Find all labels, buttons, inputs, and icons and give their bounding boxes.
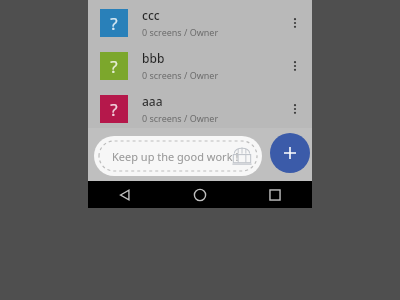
button[interactable]: ? [88,44,312,87]
other: Building [230,144,254,168]
staticText: ? [110,55,118,78]
button[interactable]: More options [282,96,308,122]
button[interactable]: Home [162,181,237,208]
button[interactable]: More options [282,10,308,36]
staticText: 0 screens / Owner [142,112,219,124]
button[interactable]: Keep up the good work ! [94,136,262,176]
button[interactable]: ? [88,87,312,130]
staticText: ccc [142,7,160,23]
staticText: 0 screens / Owner [142,69,219,81]
staticText: ? [110,98,118,121]
button[interactable]: ? [88,1,312,44]
button[interactable]: More options [282,53,308,79]
staticText: aaa [142,93,163,109]
button[interactable]: Back [88,181,162,208]
staticText: Keep up the good work ! [112,149,239,164]
button[interactable]: Recents [237,181,312,208]
staticText: bbb [142,50,165,66]
staticText: 0 screens / Owner [142,26,219,38]
button[interactable]: Add [270,133,310,173]
staticText: ? [110,12,118,35]
